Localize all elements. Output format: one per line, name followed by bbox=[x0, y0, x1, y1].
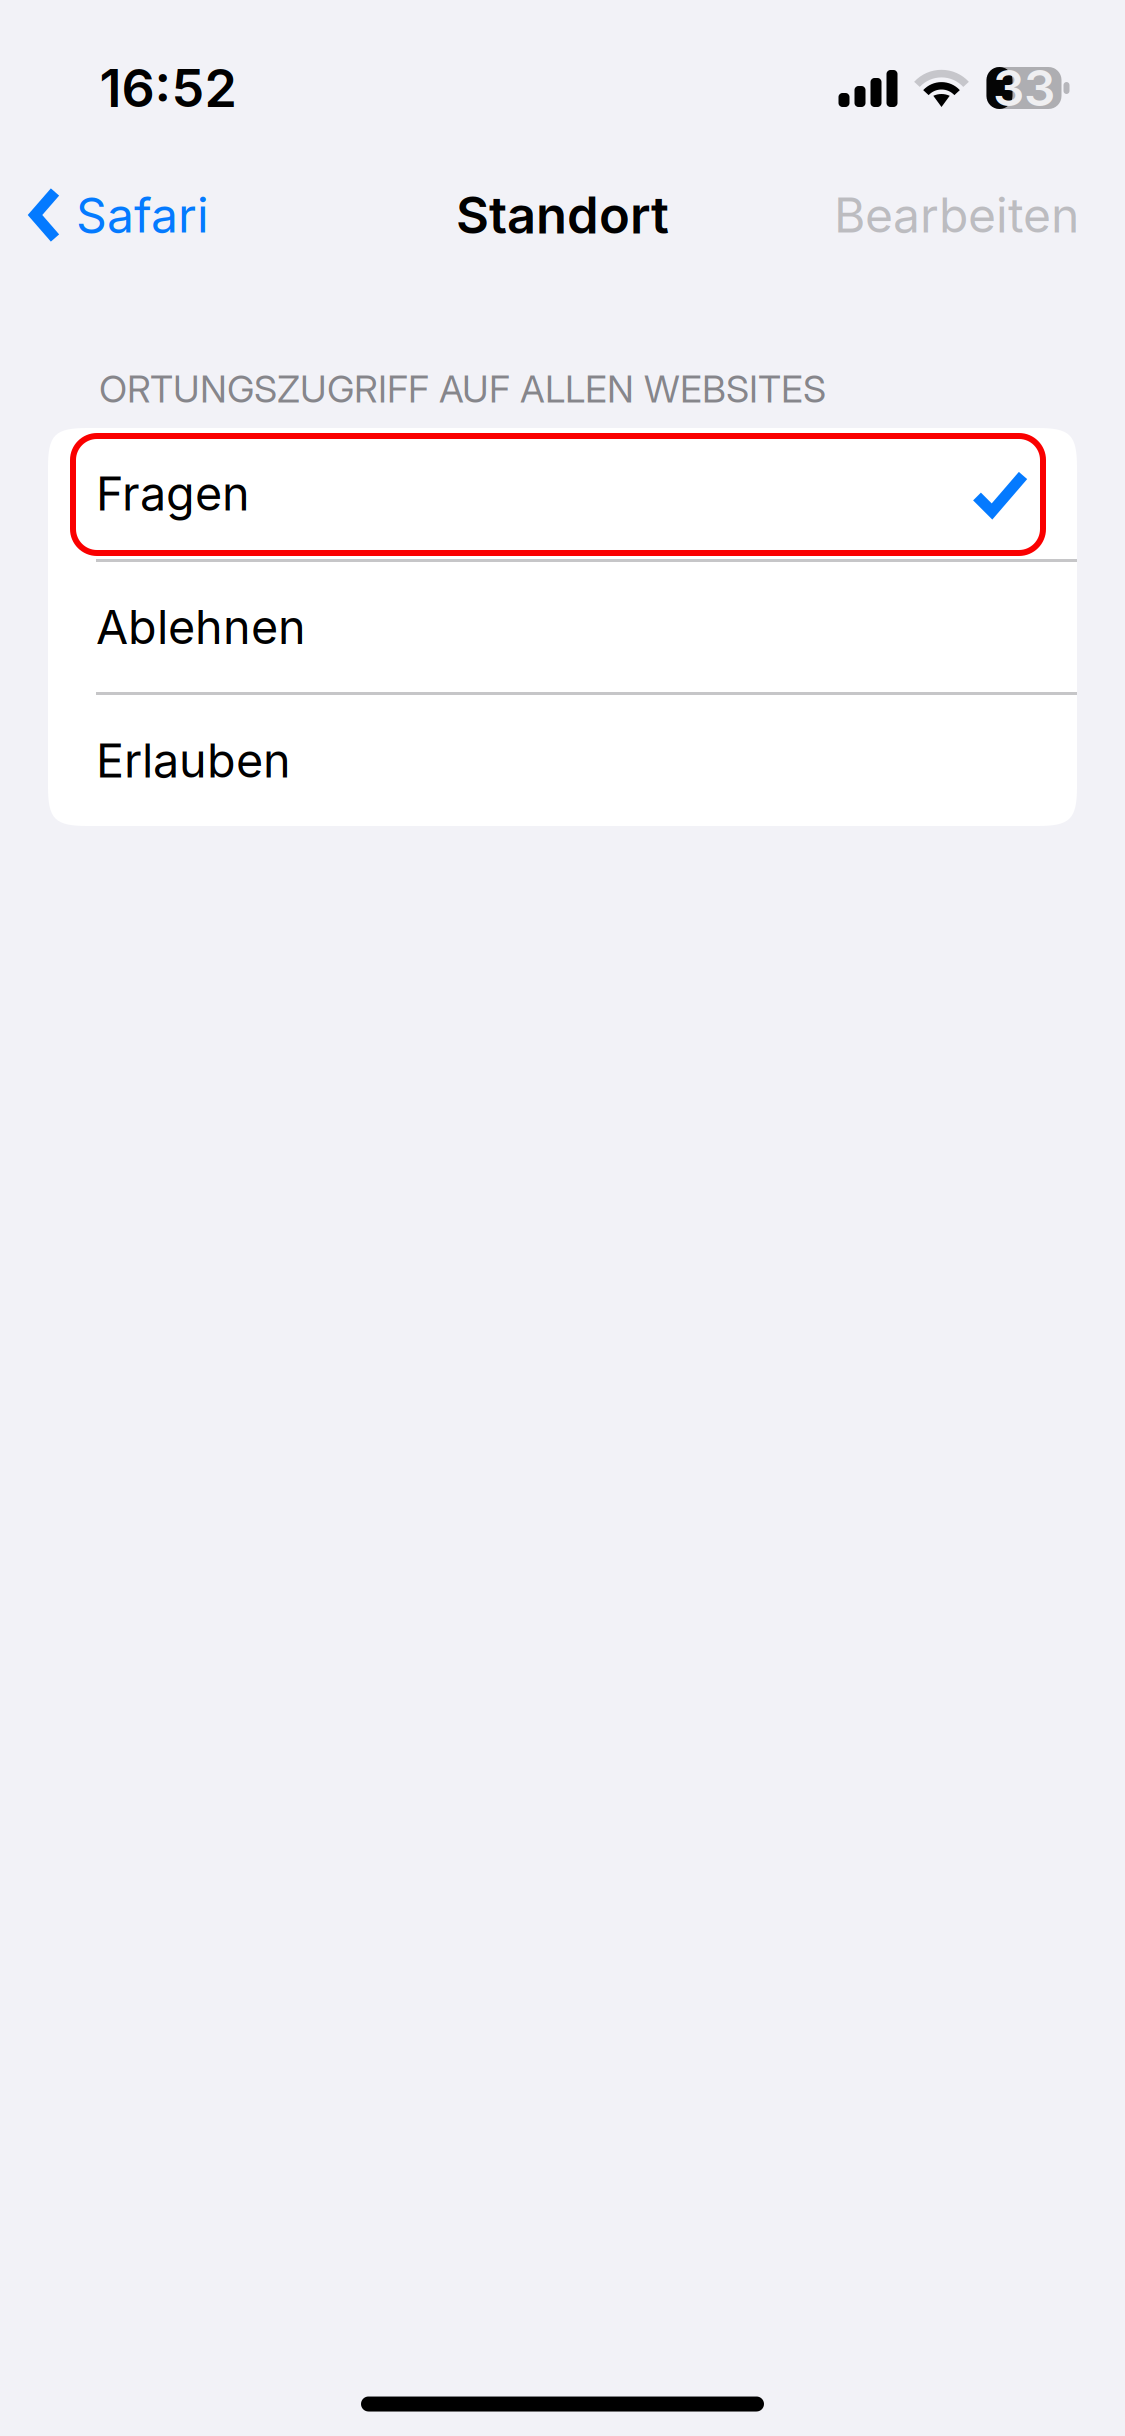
button[interactable]: Erlauben bbox=[48, 695, 1077, 826]
button[interactable]: Bearbeiten bbox=[810, 167, 1125, 263]
button[interactable]: Fragen bbox=[48, 428, 1077, 559]
staticText: Bearbeiten bbox=[834, 186, 1079, 244]
staticText: 16:52 bbox=[99, 56, 236, 119]
staticText: 33 bbox=[993, 58, 1055, 118]
staticText: Safari bbox=[76, 186, 209, 244]
button[interactable]: Ablehnen bbox=[48, 562, 1077, 692]
button[interactable]: Safari bbox=[0, 167, 233, 263]
staticText: Standort bbox=[456, 184, 669, 246]
staticText: Fragen bbox=[96, 465, 250, 522]
staticText: ORTUNGSZUGRIFF AUF ALLEN WEBSITES bbox=[99, 366, 826, 412]
staticText: Erlauben bbox=[96, 732, 291, 789]
staticText: Ablehnen bbox=[96, 599, 306, 655]
